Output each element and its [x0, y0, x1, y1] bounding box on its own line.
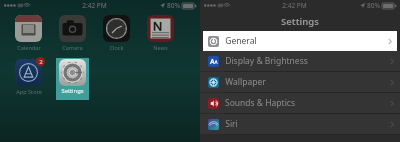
- staticText: 2:42 PM: [282, 1, 307, 10]
- button[interactable]: News: [144, 14, 177, 52]
- staticText: 80%: [367, 1, 380, 10]
- button[interactable]: Wallpaper: [200, 72, 400, 92]
- staticText: 2: [39, 58, 43, 66]
- button[interactable]: Calendar: [12, 14, 45, 52]
- staticText: App Store: [16, 88, 42, 96]
- staticText: General: [225, 35, 257, 47]
- button[interactable]: Siri: [200, 114, 400, 134]
- staticText: Calendar: [17, 44, 41, 52]
- button[interactable]: Display & Brightness: [200, 51, 400, 71]
- staticText: 2:42 PM: [82, 1, 107, 10]
- staticText: Camera: [62, 44, 83, 52]
- staticText: Clock: [109, 44, 124, 52]
- button[interactable]: 2: [12, 58, 45, 96]
- staticText: Settings: [281, 15, 319, 28]
- staticText: News: [153, 44, 168, 52]
- button[interactable]: Clock: [100, 14, 133, 52]
- staticText: Wallpaper: [225, 76, 266, 88]
- button[interactable]: General: [203, 31, 397, 51]
- staticText: Sounds & Haptics: [225, 97, 295, 109]
- button[interactable]: Camera: [56, 14, 89, 52]
- button[interactable]: Sounds & Haptics: [200, 93, 400, 113]
- staticText: Display & Brightness: [225, 55, 308, 67]
- button[interactable]: Settings: [56, 58, 89, 100]
- staticText: Siri: [225, 118, 238, 130]
- staticText: 80%: [167, 1, 180, 10]
- staticText: Settings: [61, 87, 84, 95]
